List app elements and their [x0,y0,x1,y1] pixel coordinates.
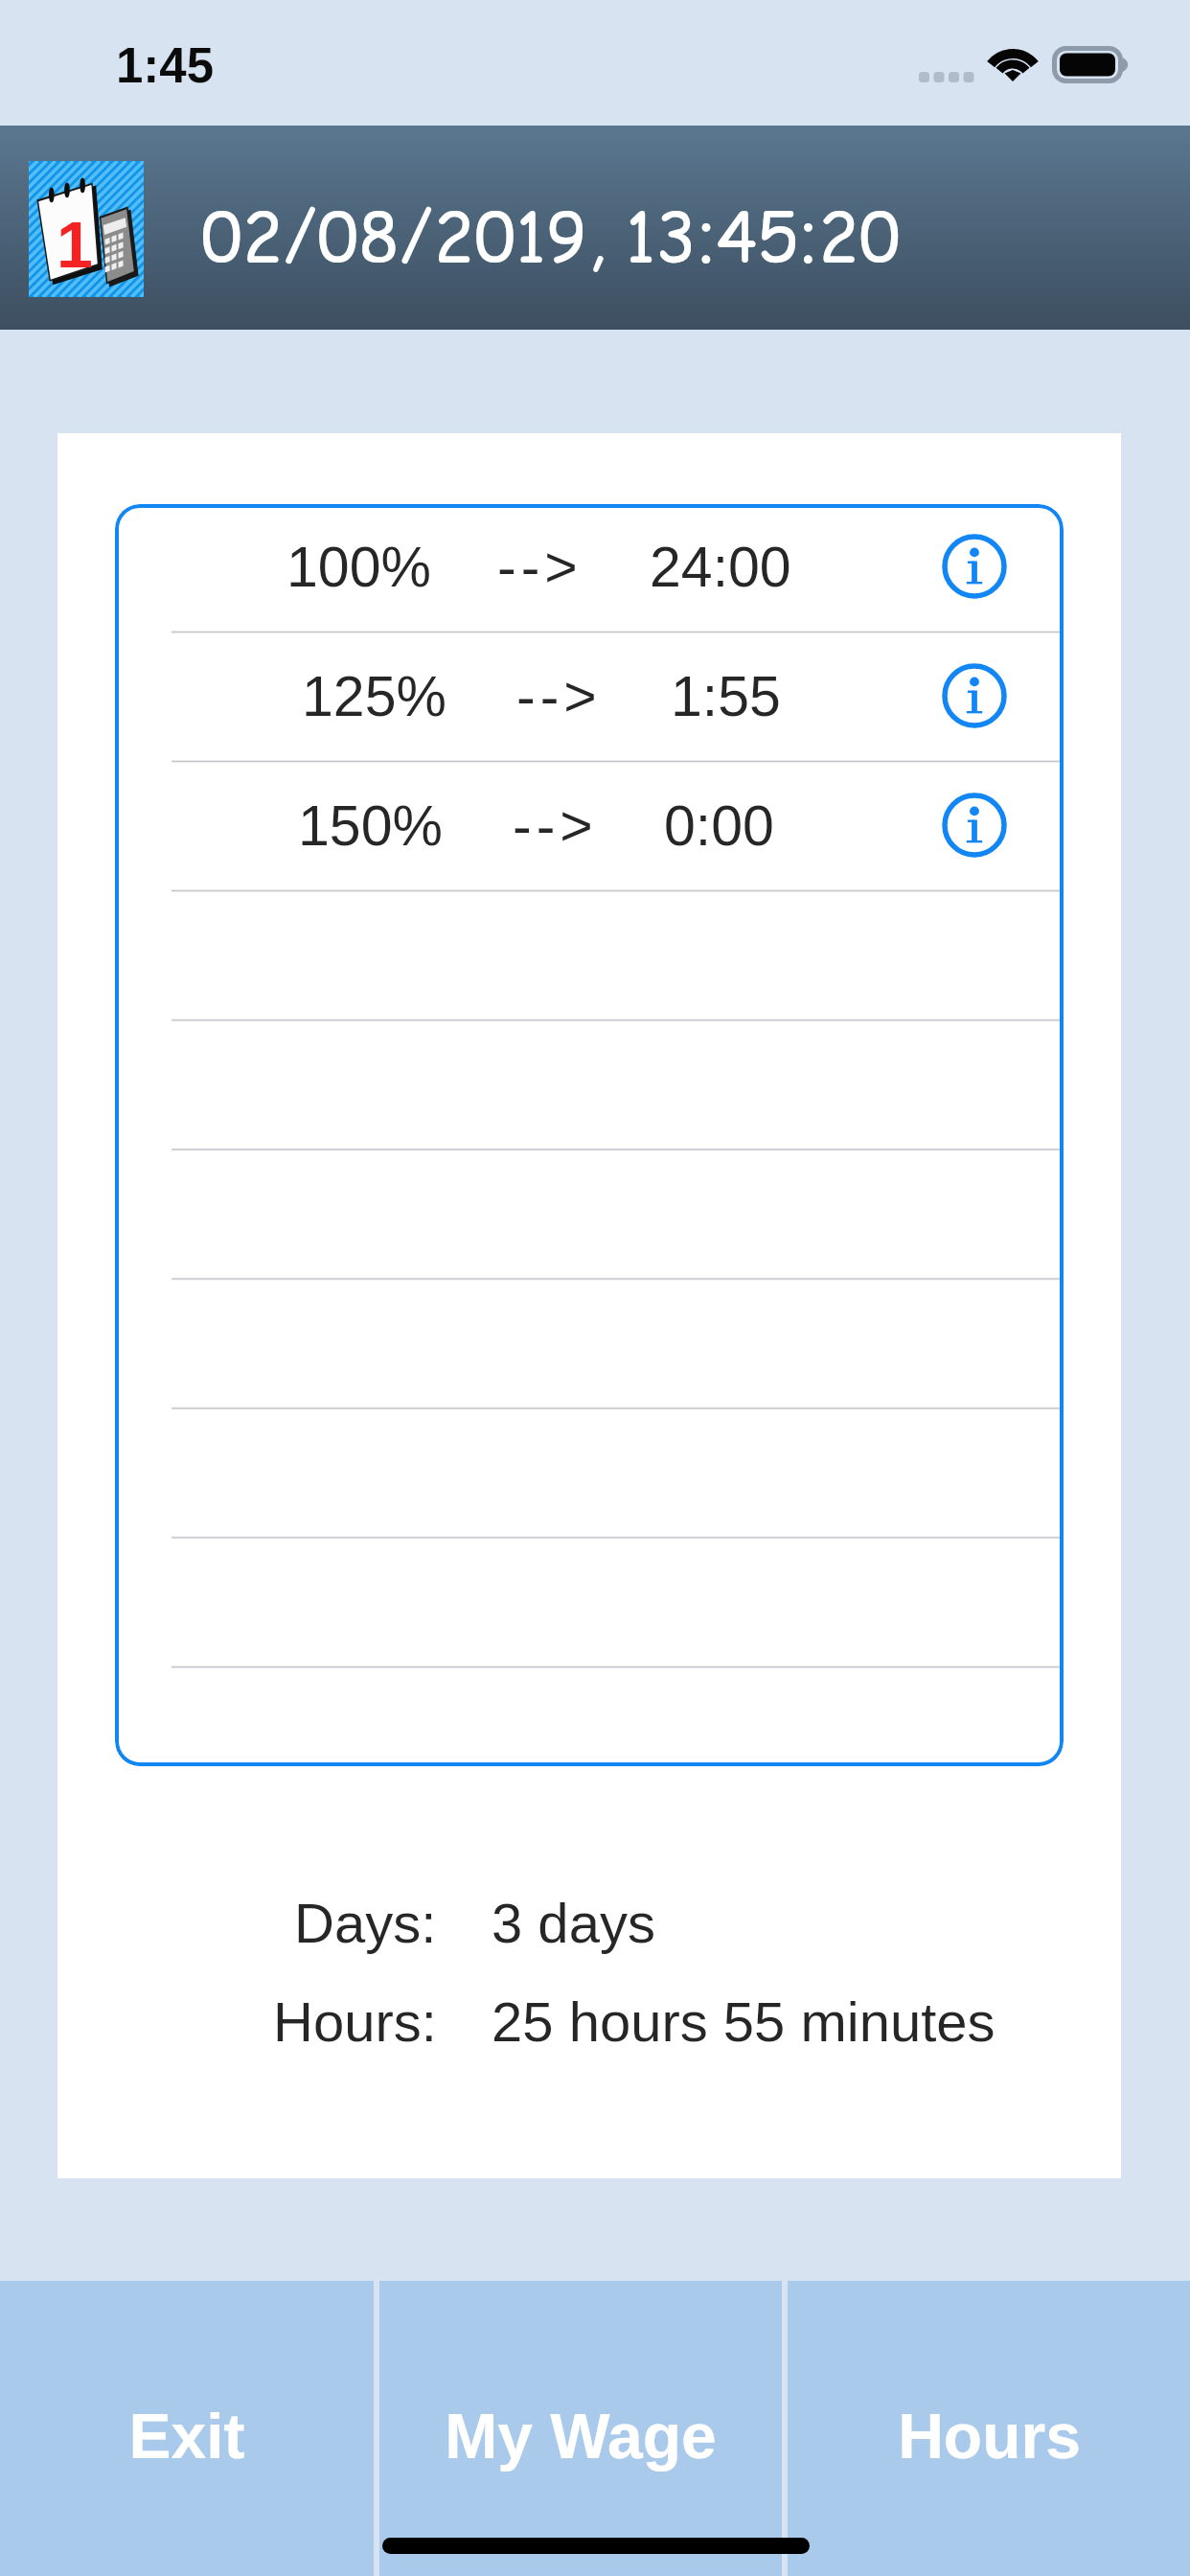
staticText: Exit [128,2401,245,2472]
button[interactable]: Exit [0,2281,374,2576]
staticText: --> [497,536,583,599]
staticText: --> [513,794,598,858]
staticText: 100% [286,536,431,599]
button[interactable]: More info [942,663,1007,728]
staticText: Hours: [273,1990,437,2053]
button[interactable] [115,637,1064,767]
staticText: My Wage [445,2401,717,2472]
staticText: 24:00 [650,536,791,599]
staticText: 1:45 [116,38,215,93]
staticText: 1:55 [671,665,781,728]
button[interactable]: More info [942,793,1007,858]
staticText: 125% [302,665,446,728]
staticText: 25 hours 55 minutes [492,1990,995,2053]
staticText: 0:00 [664,794,774,858]
button[interactable]: My Wage [379,2281,782,2576]
staticText: Days: [294,1892,437,1954]
staticText: --> [516,665,602,728]
button[interactable] [115,508,1064,637]
staticText: 1 [57,208,93,281]
button[interactable] [115,767,1064,896]
staticText: 3 days [492,1892,655,1954]
staticText: 150% [298,794,443,858]
button[interactable]: More info [942,534,1007,599]
button[interactable]: Hours [788,2281,1190,2576]
staticText: Hours [898,2401,1081,2472]
staticText: 02/08/2019, 13:45:20 [201,190,901,284]
